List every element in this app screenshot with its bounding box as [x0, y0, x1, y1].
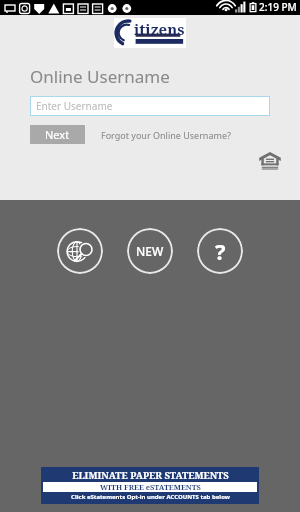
staticText: ? [215, 236, 226, 266]
staticText: Next [45, 127, 70, 142]
button[interactable]: Next [30, 125, 85, 144]
button[interactable]: Help [197, 228, 243, 274]
staticText: NEW [136, 243, 164, 259]
staticText: ELIMINATE PAPER STATEMENTS [72, 469, 229, 482]
button[interactable]: Find a branch [57, 228, 103, 274]
button[interactable]: Enter Username [30, 96, 270, 116]
staticText: 2:19 PM [259, 0, 297, 14]
staticText: Enter Username [36, 99, 113, 113]
staticText: Click eStatements Opt-in under ACCOUNTS … [71, 493, 230, 501]
staticText: itizens [134, 19, 185, 39]
button[interactable]: New user enrollment [127, 228, 173, 274]
button[interactable]: Forgot your Online Username? [101, 129, 231, 141]
button[interactable]: ELIMINATE PAPER STATEMENTS [41, 467, 259, 504]
staticText: Online Username [30, 65, 170, 88]
staticText: WITH FREE eSTATEMENTS [100, 482, 201, 492]
